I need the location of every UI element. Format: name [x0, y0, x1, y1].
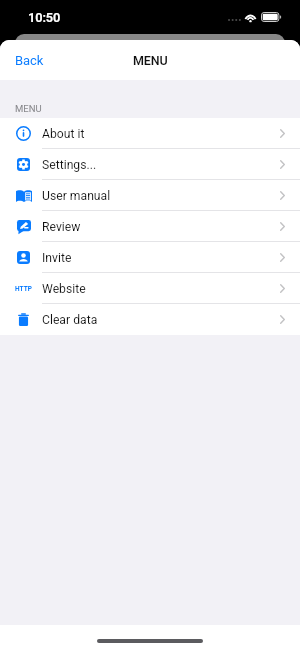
button[interactable]: Settings...	[0, 149, 300, 180]
staticText: Settings...	[42, 158, 97, 172]
staticText: About it	[42, 127, 85, 141]
button[interactable]: Review	[0, 211, 300, 242]
staticText: MENU	[133, 53, 168, 68]
button[interactable]: About it	[0, 118, 300, 149]
staticText: Website	[42, 282, 86, 296]
button[interactable]: Invite	[0, 242, 300, 273]
staticText: HTTP	[15, 285, 32, 293]
staticText: User manual	[42, 189, 111, 203]
staticText: 10:50	[28, 10, 61, 25]
button[interactable]: User manual	[0, 180, 300, 211]
button[interactable]: Clear data	[0, 304, 300, 335]
staticText: Clear data	[42, 313, 98, 327]
staticText: Review	[42, 220, 81, 234]
staticText: Back	[15, 53, 44, 68]
staticText: Invite	[42, 251, 72, 265]
staticText: MENU	[15, 103, 42, 114]
button[interactable]: HTTP	[0, 273, 300, 304]
button[interactable]: Back	[0, 40, 90, 80]
